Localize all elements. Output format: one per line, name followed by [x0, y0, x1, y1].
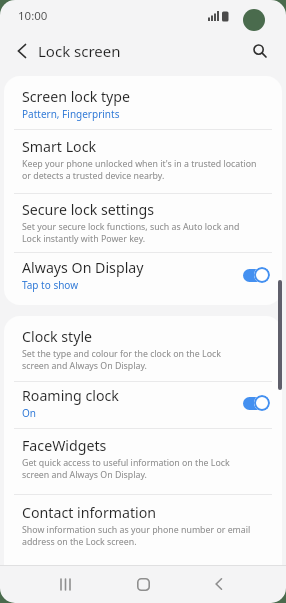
staticText: Smart Lock — [22, 137, 97, 156]
button[interactable] — [8, 37, 36, 65]
staticText: Clock style — [22, 327, 93, 346]
button[interactable] — [246, 37, 274, 65]
staticText: Pattern, Fingerprints — [22, 107, 120, 121]
button[interactable]: Roaming clock — [4, 382, 282, 428]
staticText: FaceWidgets — [22, 436, 107, 455]
staticText: Keep your phone unlocked when it's in a … — [22, 158, 257, 181]
button[interactable]: Smart Lock — [4, 130, 282, 193]
button[interactable]: Always On Display — [4, 253, 282, 301]
staticText: Get quick access to useful information o… — [22, 457, 230, 480]
button[interactable]: Screen lock type — [4, 82, 282, 129]
staticText: Roaming clock — [22, 386, 119, 405]
button[interactable] — [123, 565, 163, 603]
staticText: Lock screen — [38, 41, 121, 61]
staticText: Secure lock settings — [22, 200, 154, 219]
staticText: Always On Display — [22, 258, 144, 277]
button[interactable] — [199, 565, 239, 603]
staticText: 10:00 — [18, 8, 48, 24]
button[interactable]: FaceWidgets — [4, 429, 282, 494]
button[interactable]: Clock style — [4, 322, 282, 381]
staticText: Set the type and colour for the clock on… — [22, 348, 221, 371]
button[interactable] — [46, 565, 86, 603]
staticText: Set your secure lock functions, such as … — [22, 221, 240, 244]
staticText: Show information such as your phone numb… — [22, 524, 251, 547]
staticText: Tap to show — [22, 278, 79, 292]
staticText: On — [22, 406, 36, 420]
staticText: Contact information — [22, 503, 157, 522]
button[interactable]: Secure lock settings — [4, 194, 282, 252]
button[interactable]: Contact information — [4, 495, 282, 555]
staticText: Screen lock type — [22, 87, 131, 106]
